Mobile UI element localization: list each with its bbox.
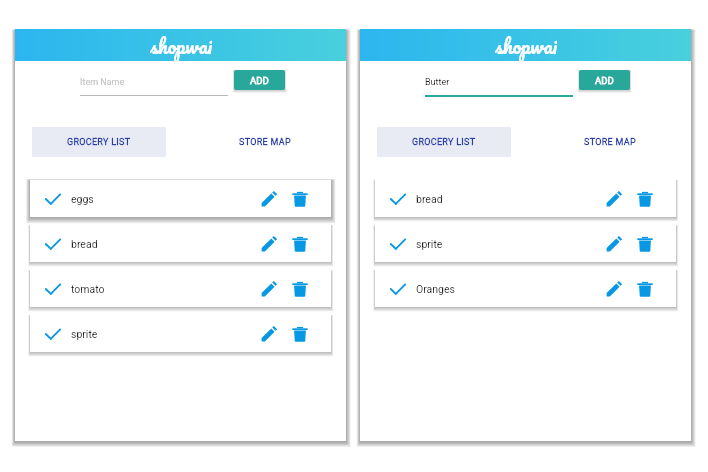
button[interactable]: bread (30, 225, 331, 262)
button[interactable]: sprite (30, 315, 331, 352)
button[interactable]: Delete (289, 188, 310, 209)
staticText: sprite (71, 328, 98, 340)
button[interactable]: Oranges (375, 270, 676, 307)
button[interactable]: Edit (259, 323, 280, 344)
button[interactable]: Delete (634, 188, 655, 209)
staticText: shopwai (495, 29, 557, 61)
staticText: ADD (595, 75, 614, 86)
button[interactable]: GROCERY LIST (377, 127, 511, 157)
button[interactable]: STORE MAP (539, 127, 680, 157)
button[interactable]: sprite (375, 225, 676, 262)
button[interactable]: Delete (289, 278, 310, 299)
button[interactable]: tomato (30, 270, 331, 307)
staticText: GROCERY LIST (412, 137, 476, 148)
staticText: ADD (250, 75, 269, 86)
staticText: Butter (425, 77, 450, 88)
staticText: sprite (416, 238, 443, 250)
staticText: Item Name (80, 77, 125, 88)
button[interactable]: ADD (234, 70, 285, 90)
button[interactable]: Edit (259, 188, 280, 209)
button[interactable]: Edit (259, 278, 280, 299)
button[interactable]: Edit (604, 188, 625, 209)
button[interactable]: Delete (289, 233, 310, 254)
button[interactable]: ADD (579, 70, 630, 90)
button[interactable]: eggs (30, 180, 331, 217)
button[interactable]: Edit (604, 278, 625, 299)
staticText: bread (416, 193, 443, 205)
button[interactable]: Delete (634, 233, 655, 254)
button[interactable]: GROCERY LIST (32, 127, 166, 157)
staticText: bread (71, 238, 98, 250)
staticText: tomato (71, 283, 105, 295)
button[interactable]: Delete (289, 323, 310, 344)
button[interactable]: Edit (604, 233, 625, 254)
staticText: Oranges (416, 283, 455, 295)
staticText: shopwai (150, 29, 212, 61)
staticText: GROCERY LIST (67, 137, 131, 148)
staticText: STORE MAP (239, 137, 291, 148)
staticText: STORE MAP (584, 137, 636, 148)
button[interactable]: Delete (634, 278, 655, 299)
button[interactable]: bread (375, 180, 676, 217)
button[interactable]: STORE MAP (194, 127, 335, 157)
staticText: eggs (71, 193, 94, 205)
button[interactable]: Edit (259, 233, 280, 254)
